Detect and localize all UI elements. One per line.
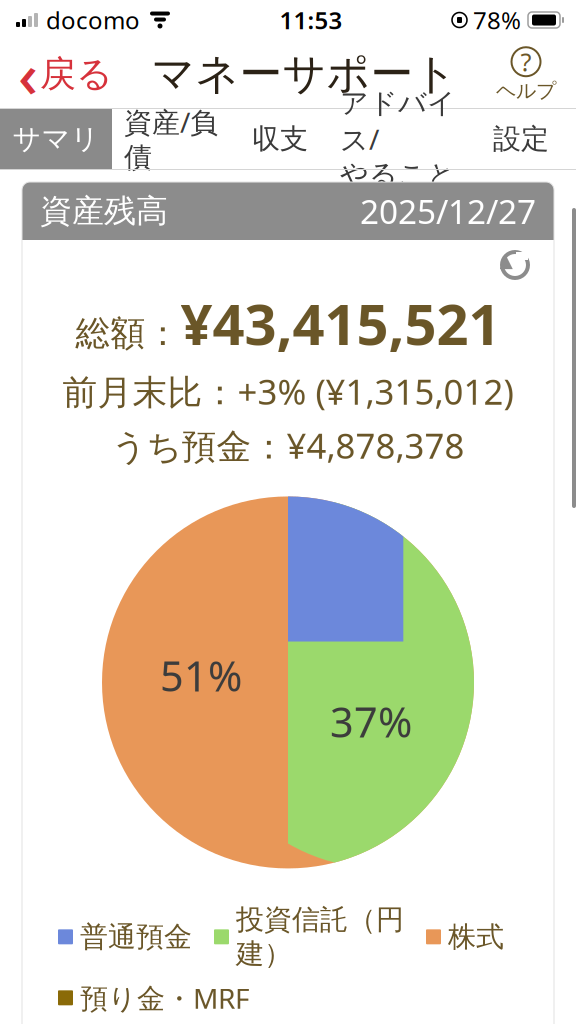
button[interactable]: 資産/負債: [112, 109, 230, 169]
button[interactable]: 収支: [230, 109, 330, 169]
staticText: 37%: [330, 694, 412, 749]
staticText: 収支: [252, 122, 308, 156]
staticText: 2025/12/27: [360, 189, 536, 233]
staticText: ‹: [18, 33, 38, 115]
staticText: 前月末比：+3% (¥1,315,012): [62, 368, 513, 414]
staticText: 資産残高: [40, 191, 168, 231]
button[interactable]: サマリ: [0, 109, 112, 169]
button[interactable]: ‹: [0, 31, 121, 117]
staticText: うち預金：¥4,878,378: [111, 422, 464, 468]
staticText: ¥43,415,521: [180, 286, 500, 360]
staticText: ?: [520, 45, 531, 78]
staticText: アドバイス/: [340, 86, 456, 158]
staticText: 預り金・MRF: [80, 979, 250, 1016]
staticText: マネーサポート: [151, 48, 457, 100]
staticText: 51%: [160, 648, 242, 703]
staticText: 株式: [448, 920, 504, 954]
button[interactable]: アドバイス/: [330, 109, 466, 169]
staticText: サマリ: [12, 122, 99, 156]
button[interactable]: 設定: [466, 109, 576, 169]
button[interactable]: 更新: [498, 240, 554, 282]
staticText: ▲: [499, 251, 512, 271]
staticText: 資産/負債: [124, 103, 218, 175]
staticText: 設定: [493, 122, 549, 156]
staticText: 78%: [473, 4, 521, 36]
button[interactable]: ヘルプ: [488, 45, 576, 103]
staticText: 11:53: [279, 4, 342, 36]
staticText: 総額：: [75, 312, 180, 355]
staticText: 投資信託（円建）: [236, 902, 404, 971]
staticText: docomo: [46, 4, 140, 36]
staticText: ヘルプ: [496, 78, 556, 103]
staticText: 普通預金: [80, 920, 192, 954]
staticText: 戻る: [40, 52, 113, 96]
staticText: やること: [340, 158, 456, 192]
